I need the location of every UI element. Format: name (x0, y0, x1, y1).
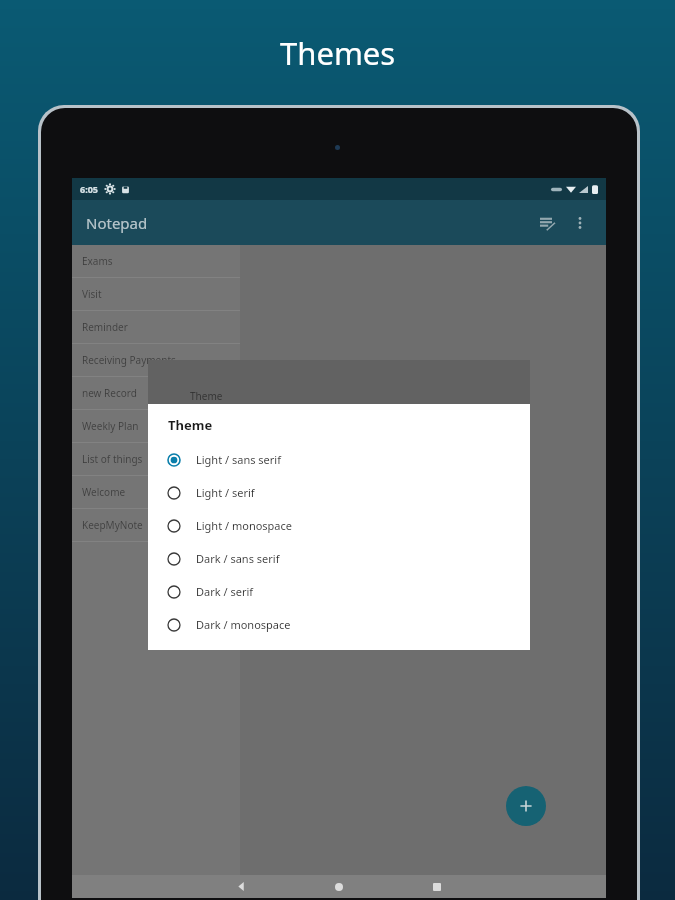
staticText: Visit (82, 287, 102, 301)
staticText: Welcome (82, 485, 126, 499)
button[interactable]: Reminder (72, 311, 240, 343)
staticText: Dark / sans serif (196, 551, 280, 566)
button[interactable]: KeepMyNote (72, 509, 240, 541)
staticText: Dark / monospace (196, 617, 291, 632)
staticText: Exams (82, 254, 113, 268)
staticText: Theme (190, 389, 223, 403)
staticText: Light / sans serif (196, 452, 281, 467)
button[interactable]: Exams (72, 245, 240, 277)
button[interactable]: Add note (506, 786, 546, 826)
button[interactable]: Dark / serif (148, 575, 530, 608)
button[interactable]: Welcome (72, 476, 240, 508)
button[interactable]: Light / monospace (148, 509, 530, 542)
button[interactable]: Dark / sans serif (148, 542, 530, 575)
button[interactable]: Visit (72, 278, 240, 310)
button[interactable]: Edit list (530, 206, 564, 240)
staticText: Themes (280, 32, 396, 74)
button[interactable]: More options (564, 207, 596, 239)
staticText: new Record (82, 386, 137, 400)
button[interactable]: Light / serif (148, 476, 530, 509)
staticText: Weekly Plan (82, 419, 139, 433)
button[interactable]: Recents (412, 875, 462, 898)
staticText: 6:05 (80, 183, 98, 195)
button[interactable]: Dark / monospace (148, 608, 530, 641)
staticText: Theme (168, 416, 213, 434)
staticText: KeepMyNote (82, 518, 143, 532)
button[interactable]: Weekly Plan (72, 410, 240, 442)
staticText: Light / serif (196, 485, 255, 500)
staticText: Reminder (82, 320, 128, 334)
staticText: Light / monospace (196, 518, 293, 533)
button[interactable]: new Record (72, 377, 240, 409)
staticText: Dark / serif (196, 584, 254, 599)
button[interactable]: Receiving Payments (72, 344, 240, 376)
button[interactable]: Back (216, 875, 266, 898)
staticText: List of things (82, 452, 143, 466)
staticText: Notepad (86, 213, 148, 233)
button[interactable]: List of things (72, 443, 240, 475)
staticText: Receiving Payments (82, 353, 176, 367)
button[interactable]: Home (314, 875, 364, 898)
button[interactable]: Light / sans serif (148, 443, 530, 476)
